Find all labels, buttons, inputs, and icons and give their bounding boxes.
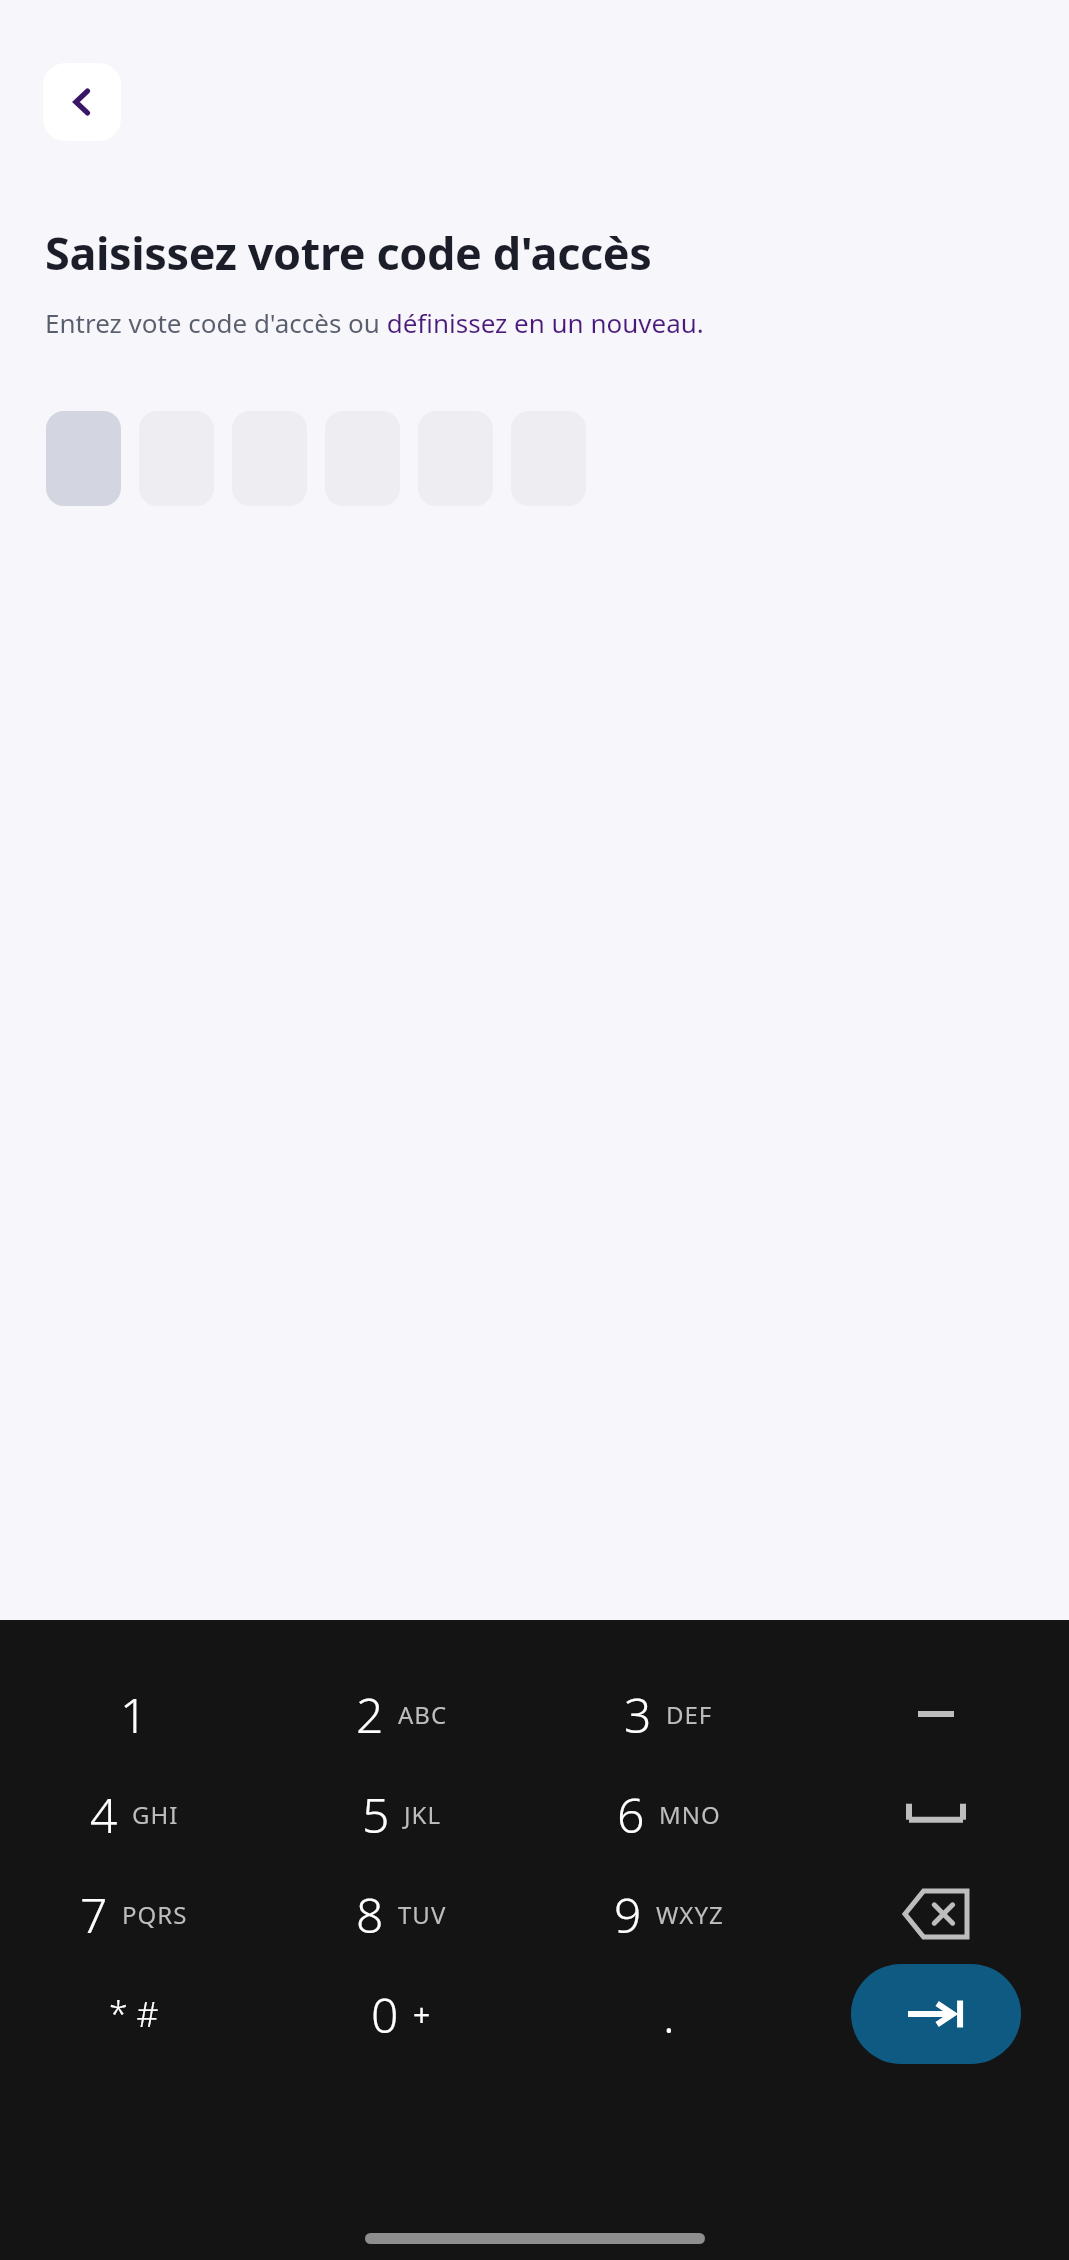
- staticText: 9: [614, 1882, 642, 1947]
- button[interactable]: Back: [43, 63, 121, 141]
- staticText: ABC: [398, 1698, 448, 1731]
- button[interactable]: 0: [268, 1964, 535, 2064]
- staticText: MNO: [659, 1798, 721, 1831]
- button[interactable]: 8: [268, 1864, 535, 1964]
- staticText: * #: [109, 1991, 159, 2037]
- staticText: WXYZ: [656, 1898, 724, 1931]
- staticText: JKL: [404, 1798, 441, 1831]
- staticText: Saisissez votre code d'accès: [45, 222, 652, 283]
- button[interactable]: Backspace: [802, 1864, 1069, 1964]
- button[interactable]: 6: [535, 1764, 802, 1864]
- staticText: 5: [362, 1782, 390, 1847]
- button[interactable]: Space: [802, 1764, 1069, 1864]
- staticText: 8: [356, 1882, 384, 1947]
- button[interactable]: 5: [268, 1764, 535, 1864]
- staticText: GHI: [132, 1798, 179, 1831]
- staticText: 6: [617, 1782, 645, 1847]
- staticText: PQRS: [122, 1898, 188, 1931]
- staticText: 7: [80, 1882, 108, 1947]
- button[interactable]: 2: [268, 1664, 535, 1764]
- staticText: +: [413, 1994, 432, 2035]
- button[interactable]: Enter: [802, 1964, 1069, 2064]
- button[interactable]: 4: [0, 1764, 268, 1864]
- staticText: .: [663, 1982, 675, 2047]
- button[interactable]: 1: [0, 1664, 268, 1764]
- staticText: 1: [120, 1682, 148, 1747]
- button[interactable]: 3: [535, 1664, 802, 1764]
- button[interactable]: Passcode digit 1: [46, 411, 121, 506]
- button[interactable]: Dash: [802, 1664, 1069, 1764]
- staticText: 2: [356, 1682, 384, 1747]
- button[interactable]: .: [535, 1964, 802, 2064]
- button[interactable]: Entrez vote code d'accès ou définissez e…: [45, 305, 704, 340]
- staticText: DEF: [666, 1698, 713, 1731]
- button[interactable]: 9: [535, 1864, 802, 1964]
- staticText: TUV: [398, 1898, 447, 1931]
- button[interactable]: 7: [0, 1864, 268, 1964]
- staticText: 3: [624, 1682, 652, 1747]
- staticText: 0: [371, 1982, 399, 2047]
- staticText: 4: [90, 1782, 118, 1847]
- button[interactable]: * #: [0, 1964, 268, 2064]
